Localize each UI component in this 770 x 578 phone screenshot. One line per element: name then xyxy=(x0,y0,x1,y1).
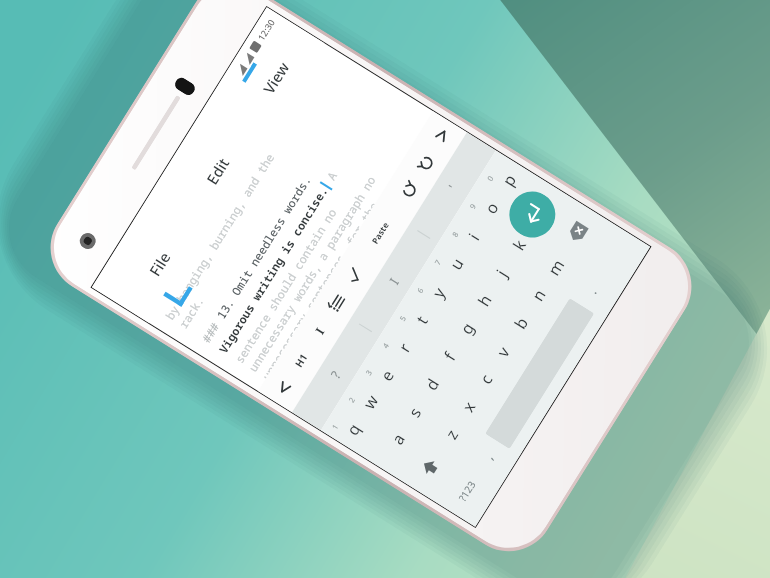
button[interactable]: c xyxy=(458,354,512,405)
button[interactable]: e xyxy=(360,350,413,400)
staticText: g xyxy=(455,318,479,338)
staticText: 9 xyxy=(467,201,478,211)
staticText: f xyxy=(439,348,460,365)
staticText: o xyxy=(480,198,504,218)
button[interactable]: Paste xyxy=(345,193,416,273)
staticText: , xyxy=(480,450,497,462)
staticText: ' xyxy=(444,182,461,194)
button[interactable]: List xyxy=(311,279,362,327)
staticText: 4 xyxy=(380,340,391,350)
staticText: y xyxy=(427,283,451,302)
button[interactable]: Backspace xyxy=(546,200,608,265)
staticText: q xyxy=(341,419,365,439)
button[interactable]: h xyxy=(457,275,511,326)
staticText: sentence should contain no xyxy=(232,205,341,366)
staticText: 0 xyxy=(485,173,496,183)
staticText: 3 xyxy=(363,368,374,377)
button[interactable]: File xyxy=(111,205,208,323)
staticText: z xyxy=(440,425,463,443)
button[interactable]: I xyxy=(351,226,437,336)
button[interactable]: , xyxy=(461,430,515,482)
staticText: Paste xyxy=(369,219,392,246)
staticText: rack. xyxy=(176,293,208,331)
staticText: r xyxy=(393,339,416,356)
button[interactable]: View xyxy=(227,19,324,137)
button[interactable]: Redo xyxy=(399,138,450,187)
button[interactable]: k xyxy=(492,219,546,270)
staticText: w xyxy=(358,390,383,413)
staticText: n xyxy=(527,285,551,305)
staticText: View xyxy=(258,58,293,97)
staticText: t xyxy=(411,311,433,328)
staticText: k xyxy=(508,235,531,254)
staticText: 5 xyxy=(397,313,408,323)
staticText: u xyxy=(445,254,469,274)
staticText: 12:30 xyxy=(255,16,277,43)
staticText: e xyxy=(375,365,399,385)
button[interactable]: ?123 xyxy=(436,459,497,522)
staticText: i xyxy=(463,228,484,244)
button[interactable]: a xyxy=(371,414,424,464)
staticText: H1 xyxy=(291,350,311,370)
button[interactable]: m xyxy=(528,242,582,293)
button[interactable]: Forward xyxy=(416,111,467,159)
staticText: File xyxy=(144,248,175,280)
button[interactable]: v xyxy=(476,326,530,377)
button[interactable]: r xyxy=(377,323,430,372)
staticText: unnecessary sentences, for the xyxy=(259,199,375,379)
staticText: s xyxy=(403,403,426,421)
button[interactable]: H1 xyxy=(275,335,327,385)
staticText: d xyxy=(420,374,444,394)
button[interactable]: f xyxy=(422,331,476,382)
staticText: ? xyxy=(326,367,345,382)
button[interactable]: u xyxy=(429,239,483,289)
button[interactable]: b xyxy=(493,298,547,349)
staticText: Vigorous writing is concise. xyxy=(215,183,332,356)
button[interactable]: i xyxy=(446,211,500,261)
staticText: c xyxy=(475,370,498,388)
button[interactable]: o xyxy=(464,183,518,233)
staticText: v xyxy=(492,342,515,361)
staticText: ?123 xyxy=(455,478,479,504)
button[interactable]: Undo xyxy=(382,165,433,214)
button[interactable]: d xyxy=(404,359,458,410)
button[interactable]: j xyxy=(474,247,528,298)
button[interactable]: Edit xyxy=(169,112,266,230)
button[interactable]: I xyxy=(293,306,345,356)
button[interactable]: q xyxy=(326,404,380,454)
staticText: by hanging, burning, and the xyxy=(162,150,278,323)
button[interactable]: w xyxy=(343,377,396,427)
staticText: 13. Omit needless words. xyxy=(213,173,315,322)
button[interactable]: n xyxy=(511,270,565,321)
button[interactable]: z xyxy=(424,409,478,459)
staticText: 1 xyxy=(329,422,340,431)
staticText: b xyxy=(509,313,533,333)
button[interactable]: s xyxy=(387,387,441,437)
staticText: p xyxy=(497,170,521,190)
button[interactable]: . xyxy=(564,265,619,317)
button[interactable]: ? xyxy=(292,319,379,430)
button[interactable]: t xyxy=(394,295,448,345)
staticText: h xyxy=(473,290,497,310)
button[interactable]: Shift xyxy=(399,436,461,500)
staticText: 2 xyxy=(346,395,357,404)
button[interactable]: Back xyxy=(258,364,309,412)
button[interactable]: Enter xyxy=(501,183,564,246)
staticText: j xyxy=(491,265,512,281)
staticText: x xyxy=(457,397,481,416)
staticText: l xyxy=(526,209,547,225)
staticText: . xyxy=(583,284,601,297)
button[interactable]: p xyxy=(481,155,535,205)
button[interactable]: x xyxy=(441,382,495,432)
staticText: 8 xyxy=(450,229,461,239)
button[interactable]: g xyxy=(439,303,493,354)
staticText: unnecessary words, a paragraph no xyxy=(245,173,380,375)
button[interactable]: Checklist xyxy=(328,252,379,300)
staticText: Edit xyxy=(202,154,233,188)
button[interactable]: y xyxy=(411,267,465,317)
staticText: A xyxy=(320,169,341,189)
button[interactable]: Space xyxy=(485,298,594,449)
button[interactable]: ' xyxy=(409,132,496,243)
button[interactable]: l xyxy=(509,191,563,242)
staticText: 6 xyxy=(415,285,426,295)
